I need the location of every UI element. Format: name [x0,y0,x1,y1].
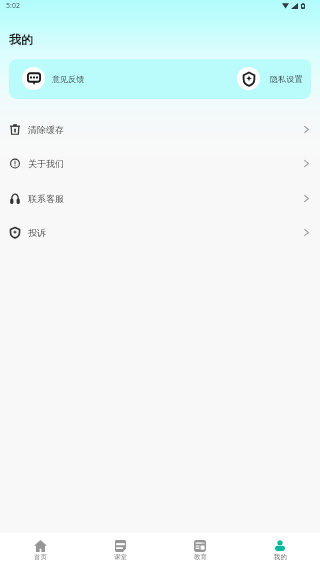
staticText: 5:02 [6,1,20,11]
button[interactable]: 投诉 [0,215,320,250]
staticText: 意见反馈 [52,74,85,84]
button[interactable]: 隐私设置 [227,59,303,99]
button[interactable]: 清除缓存 [0,112,320,147]
staticText: 隐私设置 [270,74,303,84]
button[interactable]: 意见反馈 [9,59,149,99]
staticText: 首页 [34,553,47,561]
staticText: 投诉 [28,227,46,238]
button[interactable]: 我的 [240,533,320,568]
button[interactable]: 教育 [160,533,240,568]
staticText: 我的 [274,553,287,561]
button[interactable]: 首页 [0,533,80,568]
button[interactable]: 关于我们 [0,146,320,181]
staticText: 清除缓存 [28,124,64,135]
button[interactable]: 联系客服 [0,181,320,216]
staticText: 教育 [194,553,207,561]
staticText: 我的 [9,32,33,47]
staticText: 关于我们 [28,158,64,169]
staticText: 联系客服 [28,193,64,204]
staticText: 课堂 [114,553,127,561]
button[interactable]: 课堂 [80,533,160,568]
